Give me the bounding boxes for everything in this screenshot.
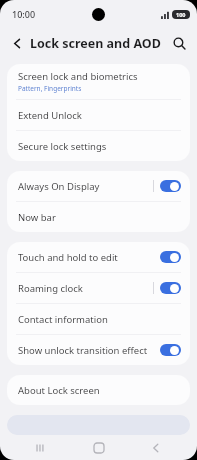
button[interactable]: Show unlock transition effect bbox=[7, 335, 190, 365]
staticText: Show unlock transition effect bbox=[18, 344, 153, 357]
staticText: 10:00 bbox=[12, 8, 36, 20]
staticText: About Lock screen bbox=[18, 384, 100, 397]
button[interactable]: Home bbox=[82, 435, 116, 460]
staticText: Roaming clock bbox=[18, 282, 153, 295]
button[interactable]: Roaming clock bbox=[7, 273, 190, 303]
staticText: Lock screen and AOD bbox=[30, 35, 161, 52]
button[interactable]: Touch and hold to edit bbox=[7, 242, 190, 272]
staticText: Screen lock and biometrics bbox=[18, 70, 138, 83]
staticText: Touch and hold to edit bbox=[18, 251, 153, 264]
button[interactable]: Show unlock transition effect toggle bbox=[160, 344, 181, 356]
button[interactable]: About Lock screen bbox=[7, 375, 190, 405]
button[interactable]: Always On Display bbox=[7, 171, 190, 201]
button[interactable]: Secure lock settings bbox=[7, 131, 190, 161]
staticText: Extend Unlock bbox=[18, 109, 82, 122]
button[interactable]: Back bbox=[139, 435, 173, 460]
button[interactable]: Now bar bbox=[7, 202, 190, 232]
button[interactable]: Touch and hold to edit toggle bbox=[160, 251, 181, 263]
staticText: Now bar bbox=[18, 211, 56, 224]
staticText: Always On Display bbox=[18, 180, 153, 193]
button[interactable]: Contact information bbox=[7, 304, 190, 334]
staticText: Secure lock settings bbox=[18, 140, 107, 153]
button[interactable]: Search bbox=[166, 30, 192, 56]
staticText: 100 bbox=[176, 11, 186, 18]
button[interactable]: Back bbox=[4, 30, 30, 56]
button[interactable]: Recents bbox=[24, 435, 58, 460]
button[interactable]: Extend Unlock bbox=[7, 100, 190, 130]
staticText: Contact information bbox=[18, 313, 108, 326]
button[interactable]: Roaming clock toggle bbox=[160, 282, 181, 294]
button[interactable]: Screen lock and biometrics bbox=[7, 64, 190, 99]
staticText: Pattern, Fingerprints bbox=[18, 84, 82, 93]
button[interactable]: Always On Display toggle bbox=[160, 180, 181, 192]
